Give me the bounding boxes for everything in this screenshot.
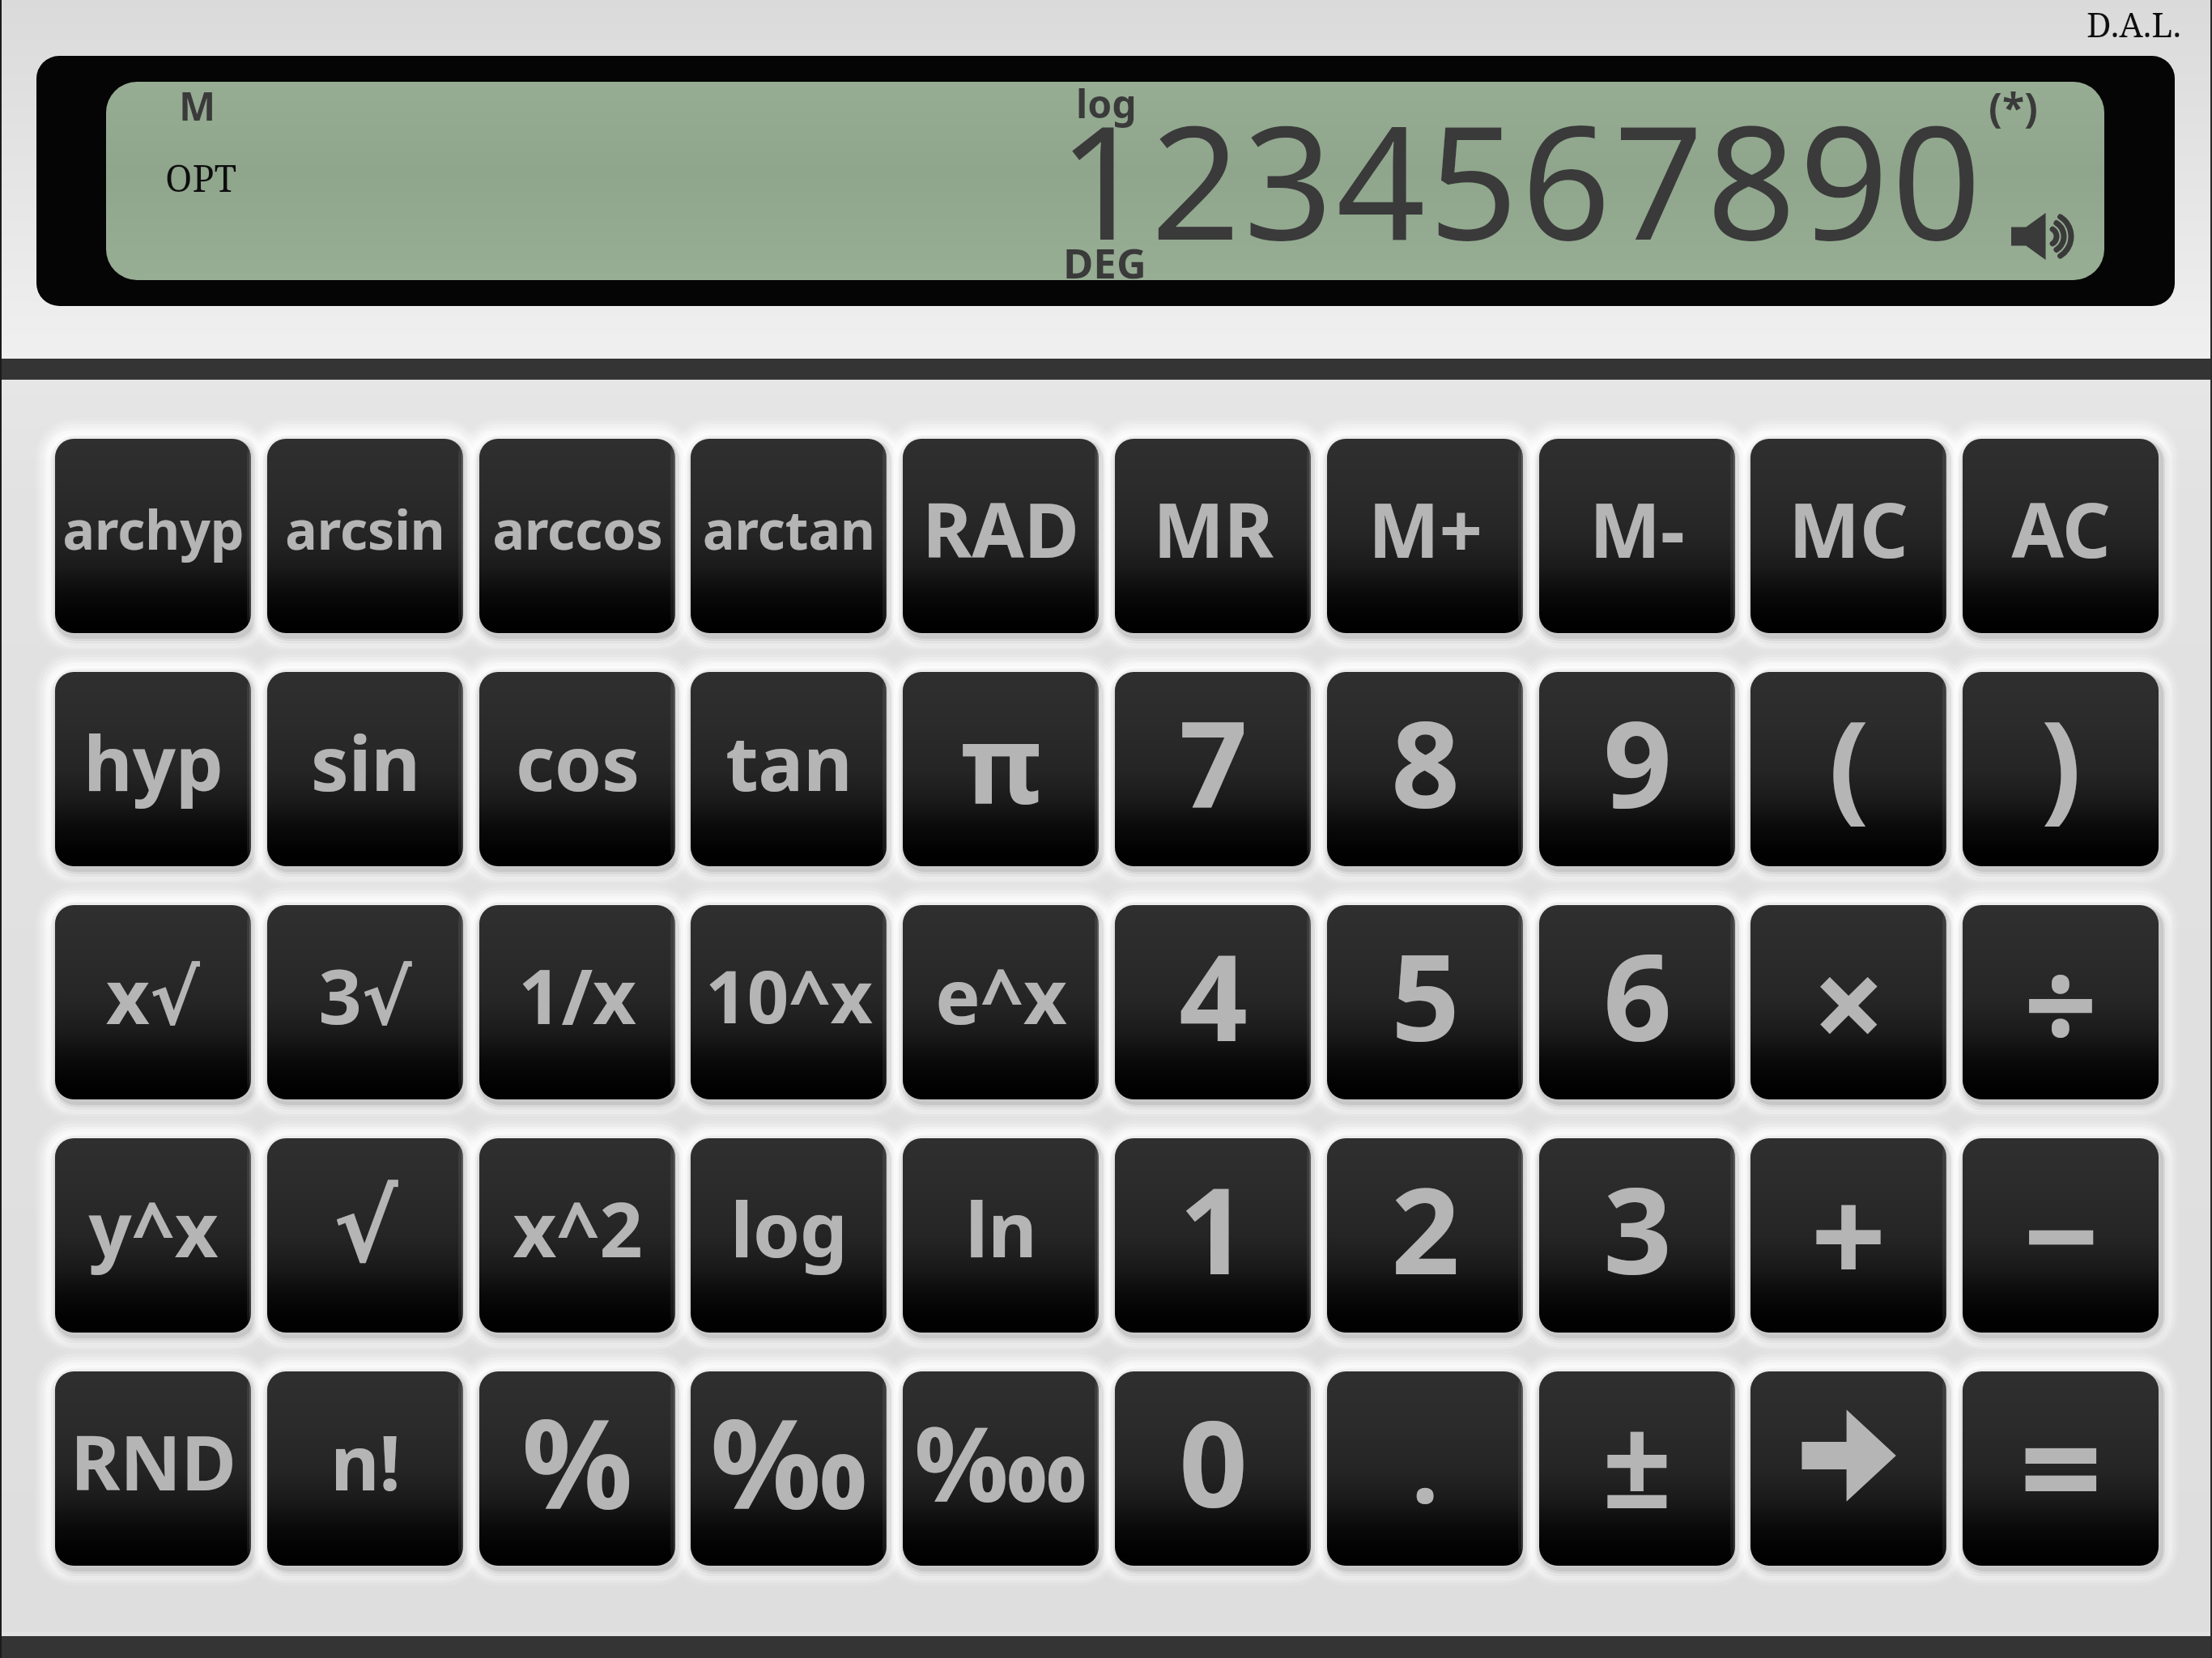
button[interactable]: M+ bbox=[1327, 439, 1523, 633]
button[interactable]: % bbox=[479, 1371, 675, 1566]
staticText: . bbox=[1411, 1399, 1439, 1531]
button[interactable]: 3 bbox=[1539, 1138, 1735, 1333]
staticText: y^x bbox=[88, 1177, 219, 1280]
staticText: ( bbox=[1828, 680, 1870, 844]
button[interactable]: π bbox=[903, 672, 1099, 866]
staticText: 4 bbox=[1179, 913, 1248, 1077]
button[interactable]: 9 bbox=[1539, 672, 1735, 866]
staticText: % bbox=[521, 1378, 633, 1545]
button[interactable]: + bbox=[1750, 1138, 1946, 1333]
staticText: OPT bbox=[165, 153, 237, 202]
button[interactable]: cos bbox=[479, 672, 675, 866]
staticText: log bbox=[730, 1177, 848, 1280]
staticText: 9 bbox=[1603, 680, 1672, 844]
staticText: ) bbox=[2040, 680, 2082, 844]
button[interactable]: sin bbox=[267, 672, 463, 866]
staticText: M+ bbox=[1368, 478, 1482, 580]
staticText: 1234567890 bbox=[1058, 82, 1984, 271]
button[interactable]: 10^x bbox=[691, 905, 887, 1099]
staticText: × bbox=[1812, 914, 1886, 1088]
staticText: 10^x bbox=[705, 946, 873, 1045]
button[interactable]: arcsin bbox=[267, 439, 463, 633]
button[interactable]: ± bbox=[1539, 1371, 1735, 1566]
button[interactable]: 8 bbox=[1327, 672, 1523, 866]
button[interactable]: 4 bbox=[1115, 905, 1311, 1099]
staticText: 2 bbox=[1391, 1146, 1460, 1310]
button[interactable]: x√ bbox=[55, 905, 251, 1099]
button[interactable]: hyp bbox=[55, 672, 251, 866]
button[interactable]: RND bbox=[55, 1371, 251, 1566]
button[interactable]: 6 bbox=[1539, 905, 1735, 1099]
button[interactable]: − bbox=[1963, 1138, 2159, 1333]
staticText: log bbox=[1076, 82, 1137, 130]
staticText: 1 bbox=[1179, 1146, 1248, 1310]
button[interactable]: ) bbox=[1963, 672, 2159, 866]
other: Backspace bbox=[1800, 1408, 1897, 1503]
button[interactable]: 5 bbox=[1327, 905, 1523, 1099]
button[interactable]: log bbox=[691, 1138, 887, 1333]
staticText: 7 bbox=[1179, 680, 1248, 844]
staticText: RAD bbox=[922, 478, 1079, 580]
staticText: 3√ bbox=[318, 944, 412, 1047]
button[interactable]: 7 bbox=[1115, 672, 1311, 866]
staticText: 5 bbox=[1391, 913, 1460, 1077]
staticText: ln bbox=[965, 1177, 1037, 1280]
staticText: MC bbox=[1789, 478, 1908, 580]
button[interactable]: x^2 bbox=[479, 1138, 675, 1333]
staticText: ÷ bbox=[2023, 913, 2098, 1090]
staticText: arccos bbox=[492, 492, 663, 565]
staticText: DEG bbox=[1063, 234, 1146, 280]
button[interactable]: M- bbox=[1539, 439, 1735, 633]
button[interactable]: = bbox=[1963, 1371, 2159, 1566]
button[interactable]: e^x bbox=[903, 905, 1099, 1099]
staticText: = bbox=[2019, 1371, 2103, 1560]
button[interactable]: arccos bbox=[479, 439, 675, 633]
button[interactable]: RAD bbox=[903, 439, 1099, 633]
button[interactable]: 2 bbox=[1327, 1138, 1523, 1333]
staticText: sin bbox=[311, 711, 420, 814]
staticText: (*) bbox=[1989, 82, 2038, 134]
button[interactable]: AC bbox=[1963, 439, 2159, 633]
staticText: D.A.L. bbox=[2087, 1, 2181, 47]
button[interactable]: √ bbox=[267, 1138, 463, 1333]
staticText: AC bbox=[2011, 478, 2111, 580]
button[interactable]: ÷ bbox=[1963, 905, 2159, 1099]
button[interactable]: 1/x bbox=[479, 905, 675, 1099]
staticText: − bbox=[2023, 1143, 2099, 1323]
staticText: M bbox=[179, 82, 216, 132]
staticText: 8 bbox=[1391, 680, 1460, 844]
button[interactable]: ‱ bbox=[903, 1371, 1099, 1566]
staticText: RND bbox=[70, 1410, 236, 1513]
staticText: x^2 bbox=[513, 1177, 643, 1280]
staticText: MR bbox=[1153, 478, 1274, 580]
button[interactable]: 0 bbox=[1115, 1371, 1311, 1566]
staticText: tan bbox=[725, 711, 853, 814]
button[interactable]: MC bbox=[1750, 439, 1946, 633]
staticText: 0 bbox=[1179, 1380, 1248, 1543]
staticText: x√ bbox=[106, 944, 200, 1047]
staticText: ‱ bbox=[914, 1391, 1087, 1532]
staticText: hyp bbox=[83, 711, 223, 814]
button[interactable]: ln bbox=[903, 1138, 1099, 1333]
button[interactable]: ‰ bbox=[691, 1371, 887, 1566]
button[interactable]: archyp bbox=[55, 439, 251, 633]
staticText: n! bbox=[330, 1410, 401, 1513]
button[interactable]: arctan bbox=[691, 439, 887, 633]
staticText: + bbox=[1810, 1143, 1887, 1323]
staticText: 6 bbox=[1603, 913, 1672, 1077]
staticText: ± bbox=[1602, 1379, 1672, 1544]
staticText: π bbox=[960, 687, 1042, 836]
button[interactable]: 1 bbox=[1115, 1138, 1311, 1333]
button[interactable]: n! bbox=[267, 1371, 463, 1566]
button[interactable]: y^x bbox=[55, 1138, 251, 1333]
button[interactable]: MR bbox=[1115, 439, 1311, 633]
button[interactable]: tan bbox=[691, 672, 887, 866]
button[interactable]: ( bbox=[1750, 672, 1946, 866]
staticText: archyp bbox=[62, 492, 245, 565]
button[interactable]: × bbox=[1750, 905, 1946, 1099]
staticText: arcsin bbox=[285, 492, 445, 565]
staticText: e^x bbox=[935, 944, 1067, 1047]
button[interactable]: Backspace bbox=[1750, 1371, 1946, 1566]
button[interactable]: . bbox=[1327, 1371, 1523, 1566]
button[interactable]: 3√ bbox=[267, 905, 463, 1099]
